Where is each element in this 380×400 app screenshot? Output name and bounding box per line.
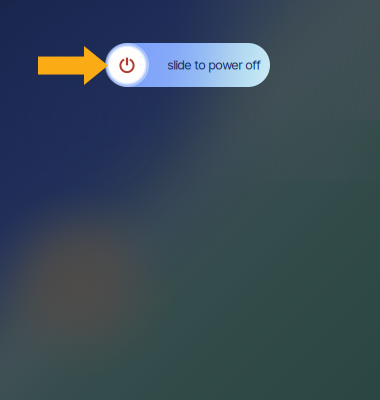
button[interactable]: slide to power off bbox=[106, 43, 270, 87]
staticText: slide to power off bbox=[167, 57, 260, 73]
